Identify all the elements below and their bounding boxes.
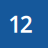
button[interactable]: 12 <box>0 0 48 48</box>
staticText: 12 <box>8 9 33 39</box>
